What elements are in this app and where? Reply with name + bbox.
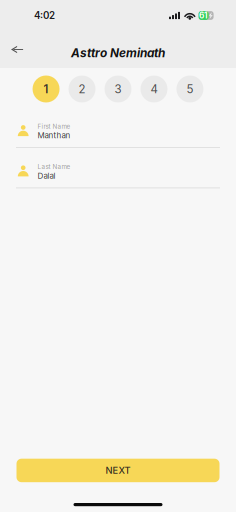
staticText: Dalal [38,171,56,181]
staticText: 5 [186,82,193,96]
button[interactable]: 1 [32,75,60,102]
staticText: 4 [150,82,157,96]
staticText: 4:02 [34,10,55,21]
button[interactable]: 4 [140,75,168,102]
button[interactable]: 2 [68,75,96,102]
staticText: 3 [114,82,121,96]
button[interactable]: 5 [176,75,204,102]
staticText: 2 [78,82,85,96]
staticText: Manthan [38,131,71,140]
staticText: 1 [43,82,48,96]
button[interactable]: NEXT [16,459,219,482]
staticText: NEXT [105,465,130,476]
staticText: Last Name [38,163,71,170]
staticText: 61 [199,10,208,20]
staticText: First Name [38,123,71,130]
button[interactable]: Back [5,34,29,64]
button[interactable]: 3 [104,75,132,102]
staticText: Asttro Neminath [71,46,165,60]
